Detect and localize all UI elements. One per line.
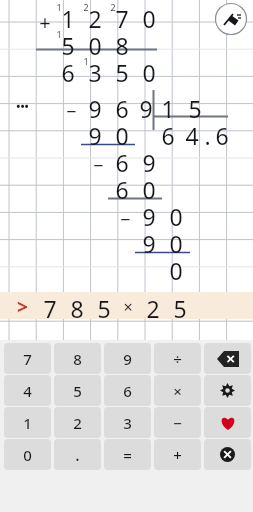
- staticText: 0: [169, 228, 183, 259]
- staticText: .: [75, 444, 80, 466]
- button[interactable]: 5: [54, 375, 101, 406]
- staticText: 1: [56, 1, 62, 13]
- staticText: 9: [88, 93, 102, 124]
- button[interactable]: Clear worksheet: [214, 2, 248, 36]
- staticText: 2: [146, 293, 160, 324]
- button[interactable]: +: [154, 439, 201, 470]
- staticText: 3: [88, 57, 102, 88]
- staticText: −: [93, 153, 104, 177]
- staticText: 2: [110, 1, 116, 13]
- staticText: 5: [173, 293, 187, 324]
- staticText: 6: [61, 57, 75, 88]
- button[interactable]: 9: [104, 343, 151, 374]
- staticText: •••: [16, 98, 29, 113]
- button[interactable]: 6: [104, 375, 151, 406]
- staticText: 0: [142, 174, 156, 205]
- staticText: 9: [88, 120, 102, 151]
- staticText: ÷: [173, 349, 182, 369]
- staticText: 9: [142, 201, 156, 232]
- button[interactable]: .: [54, 439, 101, 470]
- staticText: 4: [185, 120, 199, 151]
- staticText: 5: [188, 93, 202, 124]
- staticText: ×: [173, 381, 182, 401]
- button[interactable]: 7: [4, 343, 51, 374]
- button[interactable]: −: [154, 407, 201, 438]
- staticText: 0: [142, 57, 156, 88]
- staticText: 5: [73, 381, 82, 401]
- staticText: 3: [123, 413, 132, 433]
- staticText: 1: [61, 3, 75, 34]
- staticText: 6: [115, 174, 129, 205]
- button[interactable]: 0: [4, 439, 51, 470]
- staticText: 0: [142, 3, 156, 34]
- staticText: ×: [123, 296, 133, 318]
- staticText: 1: [56, 28, 62, 40]
- staticText: 9: [139, 93, 153, 124]
- staticText: 7: [43, 293, 57, 324]
- staticText: .: [204, 120, 211, 151]
- staticText: 8: [73, 349, 82, 369]
- staticText: 9: [142, 228, 156, 259]
- staticText: −: [173, 413, 182, 433]
- button[interactable]: 3: [104, 407, 151, 438]
- button[interactable]: =: [104, 439, 151, 470]
- staticText: 6: [115, 147, 129, 178]
- staticText: 7: [115, 3, 129, 34]
- staticText: −: [66, 99, 77, 123]
- button[interactable]: 4: [4, 375, 51, 406]
- staticText: +: [39, 9, 51, 36]
- staticText: 5: [115, 57, 129, 88]
- staticText: 9: [142, 147, 156, 178]
- button[interactable]: 1: [4, 407, 51, 438]
- button[interactable]: Favorite: [204, 407, 251, 438]
- staticText: 6: [115, 93, 129, 124]
- staticText: 0: [88, 30, 102, 61]
- staticText: 5: [97, 293, 111, 324]
- staticText: 0: [115, 120, 129, 151]
- button[interactable]: 8: [54, 343, 101, 374]
- staticText: =: [123, 445, 132, 465]
- staticText: 1: [23, 413, 32, 433]
- staticText: 5: [61, 30, 75, 61]
- staticText: 9: [123, 349, 132, 369]
- button[interactable]: 2: [54, 407, 101, 438]
- button[interactable]: Backspace: [204, 343, 251, 374]
- staticText: 1: [161, 93, 175, 124]
- staticText: 8: [115, 30, 129, 61]
- staticText: 1: [83, 55, 89, 67]
- staticText: 2: [83, 1, 89, 13]
- button[interactable]: Settings: [204, 375, 251, 406]
- staticText: 0: [169, 255, 183, 286]
- staticText: +: [173, 445, 182, 465]
- staticText: >: [17, 294, 28, 320]
- button[interactable]: ÷: [154, 343, 201, 374]
- staticText: 6: [161, 120, 175, 151]
- button[interactable]: ×: [154, 375, 201, 406]
- staticText: 4: [23, 381, 32, 401]
- staticText: 6: [215, 120, 229, 151]
- staticText: 2: [88, 3, 102, 34]
- staticText: 2: [73, 413, 82, 433]
- staticText: 7: [23, 349, 32, 369]
- staticText: −: [120, 207, 131, 231]
- staticText: 8: [70, 293, 84, 324]
- staticText: 6: [123, 381, 132, 401]
- button[interactable]: Close: [204, 439, 251, 470]
- staticText: 0: [169, 201, 183, 232]
- staticText: 0: [23, 445, 32, 465]
